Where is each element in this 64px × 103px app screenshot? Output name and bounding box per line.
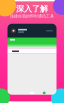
staticText: 连接你我的即时通讯工具 [10,14,54,19]
staticText: 深入了解 [16,4,48,14]
